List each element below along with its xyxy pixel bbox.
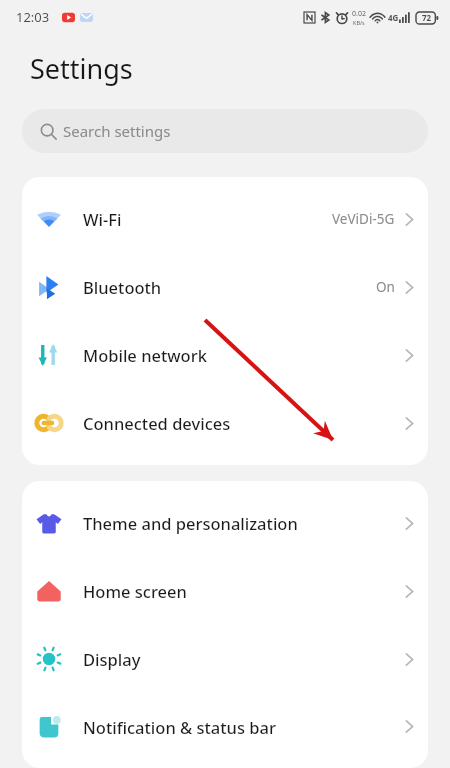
button[interactable]: Bluetooth [22, 253, 428, 321]
button[interactable]: Theme and personalization [22, 489, 428, 557]
button[interactable]: Notification & status bar [22, 693, 428, 760]
staticText: Bluetooth [83, 276, 162, 298]
staticText: Wi-Fi [83, 208, 122, 230]
button[interactable]: Connected devices [22, 389, 428, 457]
staticText: Home screen [83, 580, 187, 602]
staticText: Notification & status bar [83, 716, 276, 738]
staticText: Connected devices [83, 412, 231, 434]
staticText: 12:03 [16, 8, 50, 26]
staticText: 72 [422, 12, 432, 23]
staticText: KB/s [353, 19, 365, 26]
staticText: 4G [388, 12, 399, 23]
staticText: On [376, 278, 395, 296]
staticText: 0.02 [352, 9, 366, 19]
staticText: Search settings [63, 121, 171, 141]
staticText: Mobile network [83, 344, 207, 366]
staticText: Theme and personalization [83, 512, 298, 534]
staticText: Display [83, 648, 141, 670]
button[interactable]: Mobile network [22, 321, 428, 389]
staticText: VeViDi-5G [332, 210, 395, 228]
button[interactable]: Home screen [22, 557, 428, 625]
staticText: Settings [30, 50, 133, 87]
button[interactable]: Search settings [22, 109, 428, 153]
button[interactable]: Wi-Fi [22, 185, 428, 253]
button[interactable]: Display [22, 625, 428, 693]
